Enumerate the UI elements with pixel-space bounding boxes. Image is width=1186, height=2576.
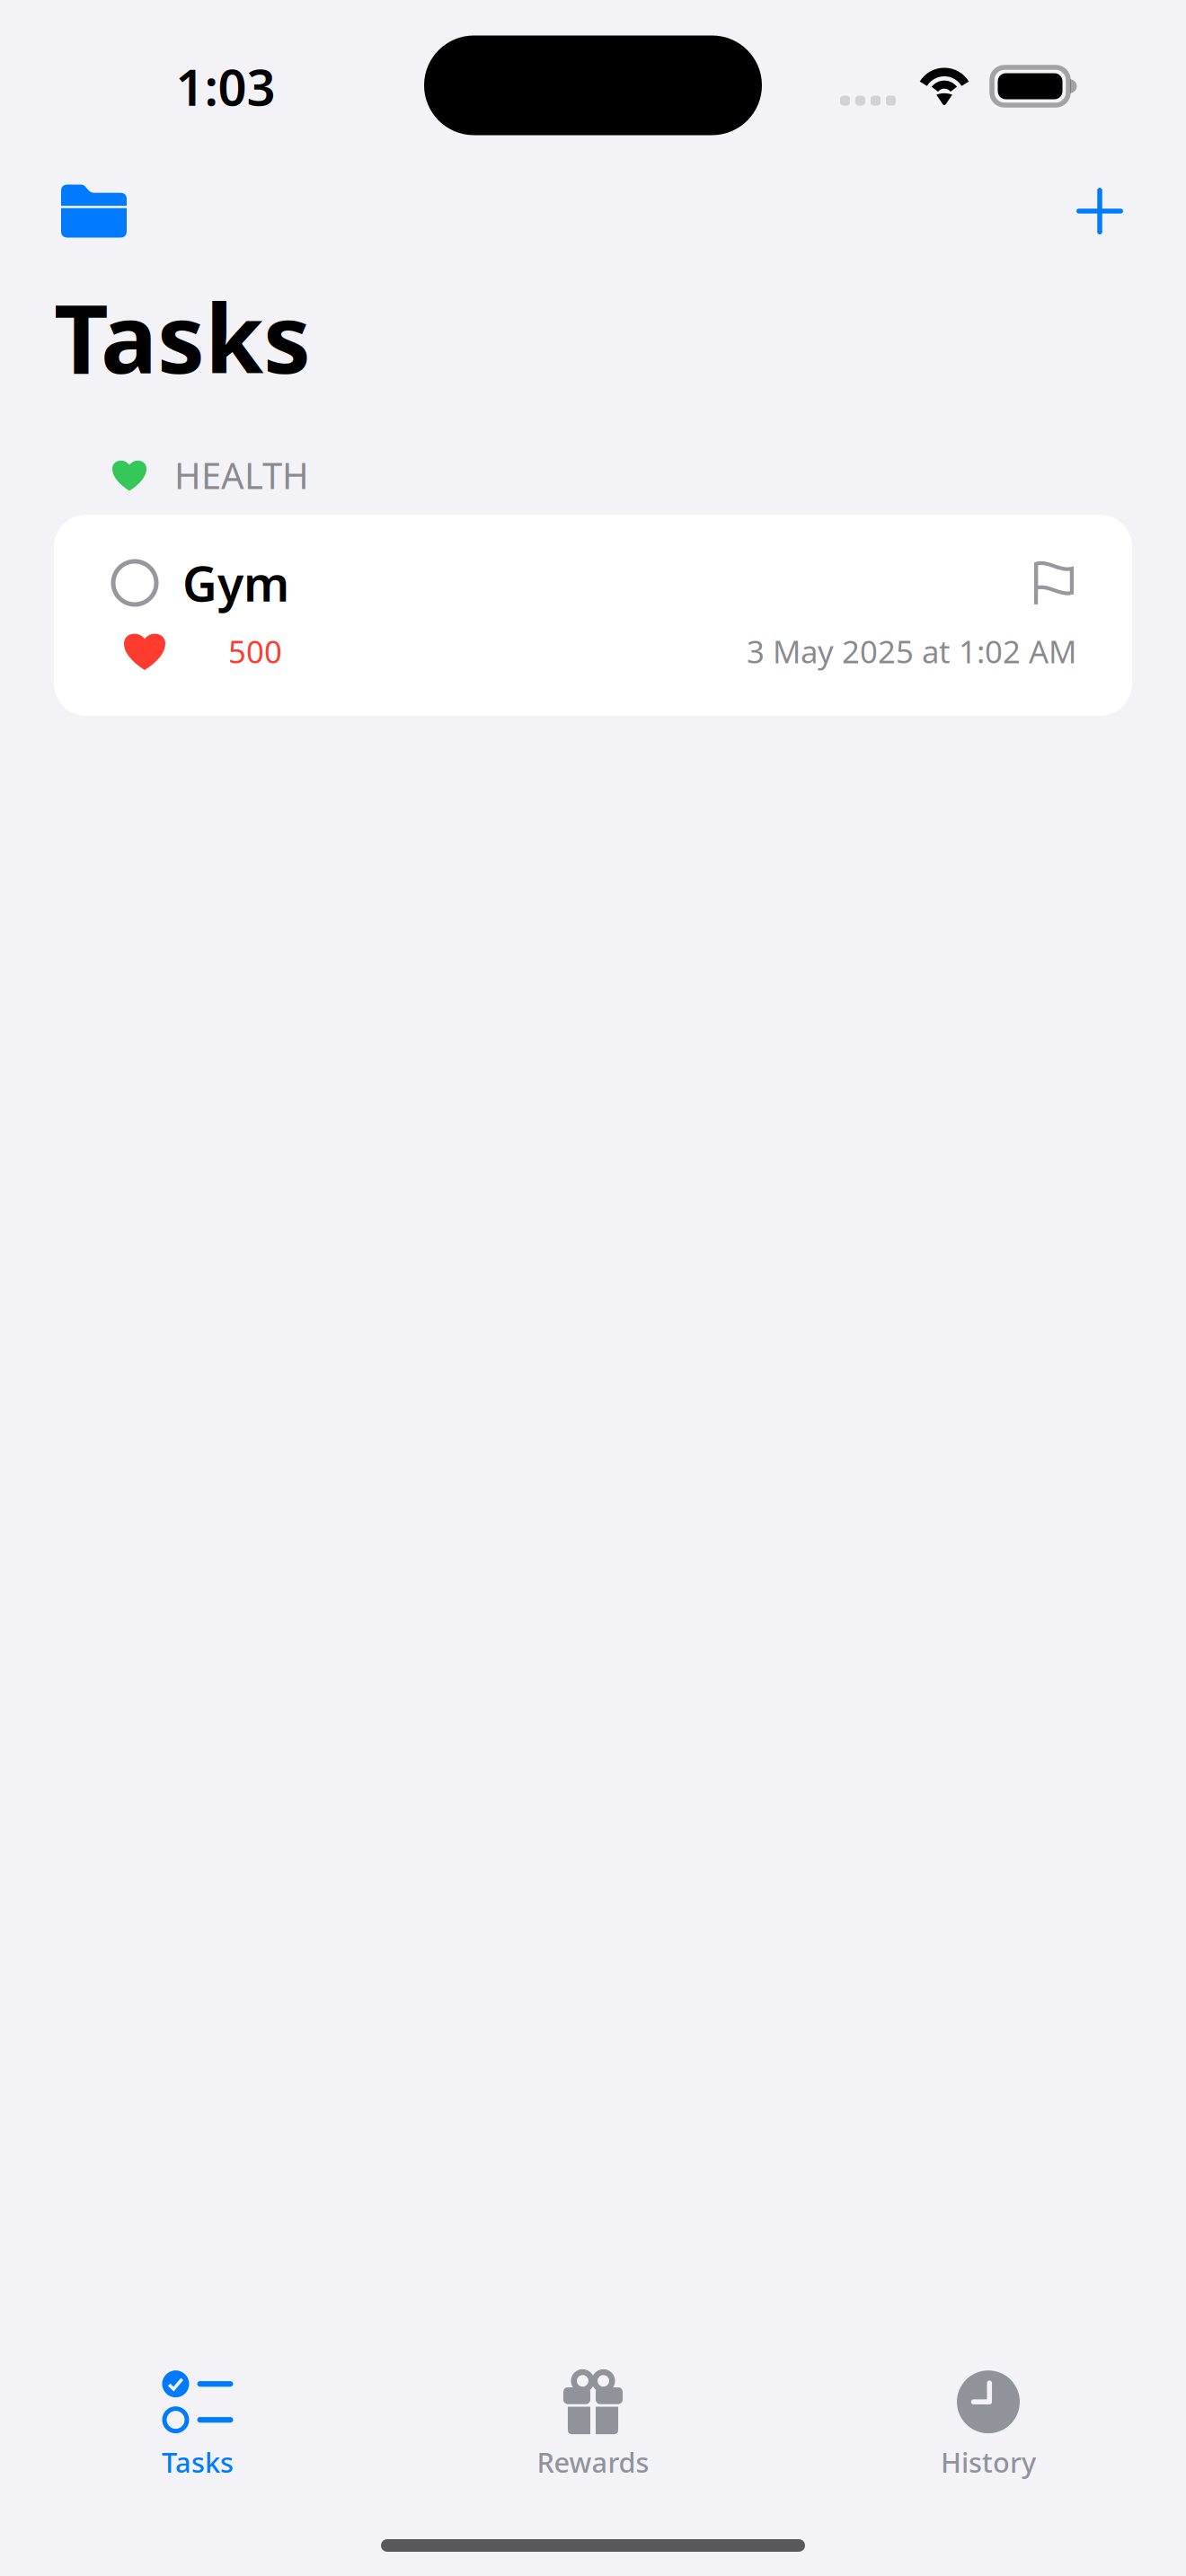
staticText: 1:03 (176, 53, 275, 120)
staticText: Rewards (537, 2444, 649, 2480)
staticText: 3 May 2025 at 1:02 AM (747, 631, 1076, 672)
button[interactable]: Folders (34, 161, 154, 261)
staticText: Tasks (162, 2444, 234, 2480)
staticText: Gym (182, 551, 289, 615)
button[interactable]: Tasks (0, 2340, 395, 2510)
staticText: 500 (228, 631, 282, 672)
button[interactable]: New task (1048, 159, 1152, 263)
staticText: History (941, 2444, 1036, 2480)
staticText: Tasks (54, 274, 311, 400)
button[interactable]: History (791, 2340, 1186, 2510)
button[interactable]: Gym (54, 515, 1132, 716)
staticText: HEALTH (174, 451, 309, 499)
button[interactable]: Rewards (395, 2340, 791, 2510)
